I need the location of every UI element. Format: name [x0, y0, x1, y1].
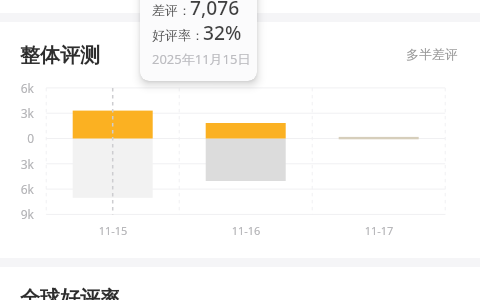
staticText: 11-16 — [216, 223, 276, 238]
staticText: 3k — [14, 105, 34, 121]
staticText: 6k — [14, 80, 34, 96]
staticText: 32% — [203, 19, 242, 45]
staticText: 7,076 — [190, 0, 240, 20]
staticText: 0 — [14, 130, 34, 146]
staticText: 6k — [14, 181, 34, 197]
staticText: 差评： — [152, 2, 191, 18]
staticText: 2025年11月15日 — [152, 50, 251, 68]
button[interactable]: 多半差评 — [406, 46, 458, 62]
staticText: 全球好评率 — [20, 286, 120, 300]
staticText: 11-17 — [349, 223, 409, 238]
staticText: 9k — [14, 206, 34, 222]
staticText: 好评率： — [152, 27, 204, 43]
staticText: 整体评测 — [20, 43, 100, 68]
staticText: 11-15 — [83, 223, 143, 238]
staticText: 3k — [14, 156, 34, 172]
